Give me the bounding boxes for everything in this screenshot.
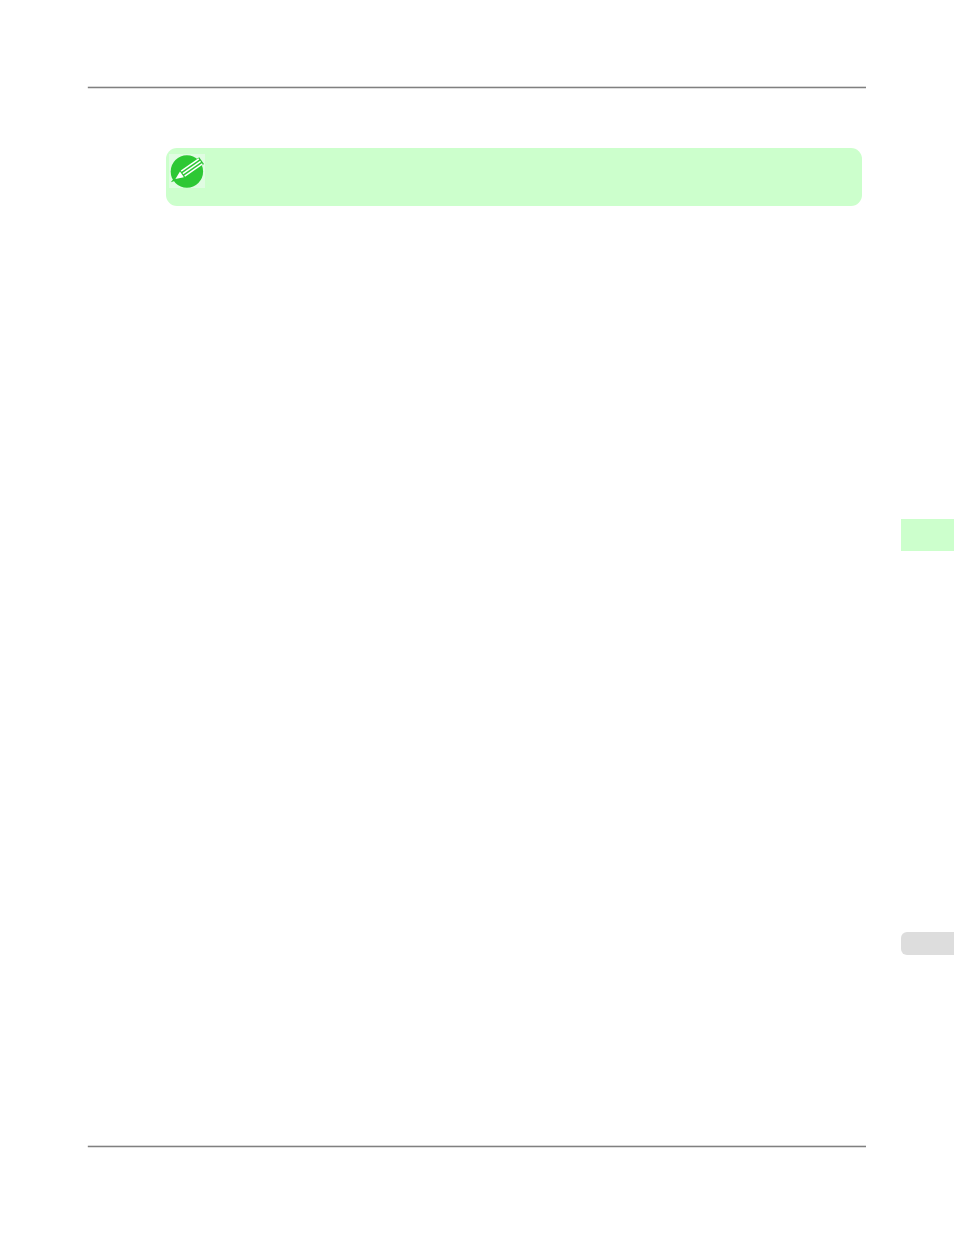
other: Note [169, 154, 205, 188]
button[interactable]: Chapter tab [901, 932, 954, 955]
button[interactable]: Note [166, 148, 862, 206]
